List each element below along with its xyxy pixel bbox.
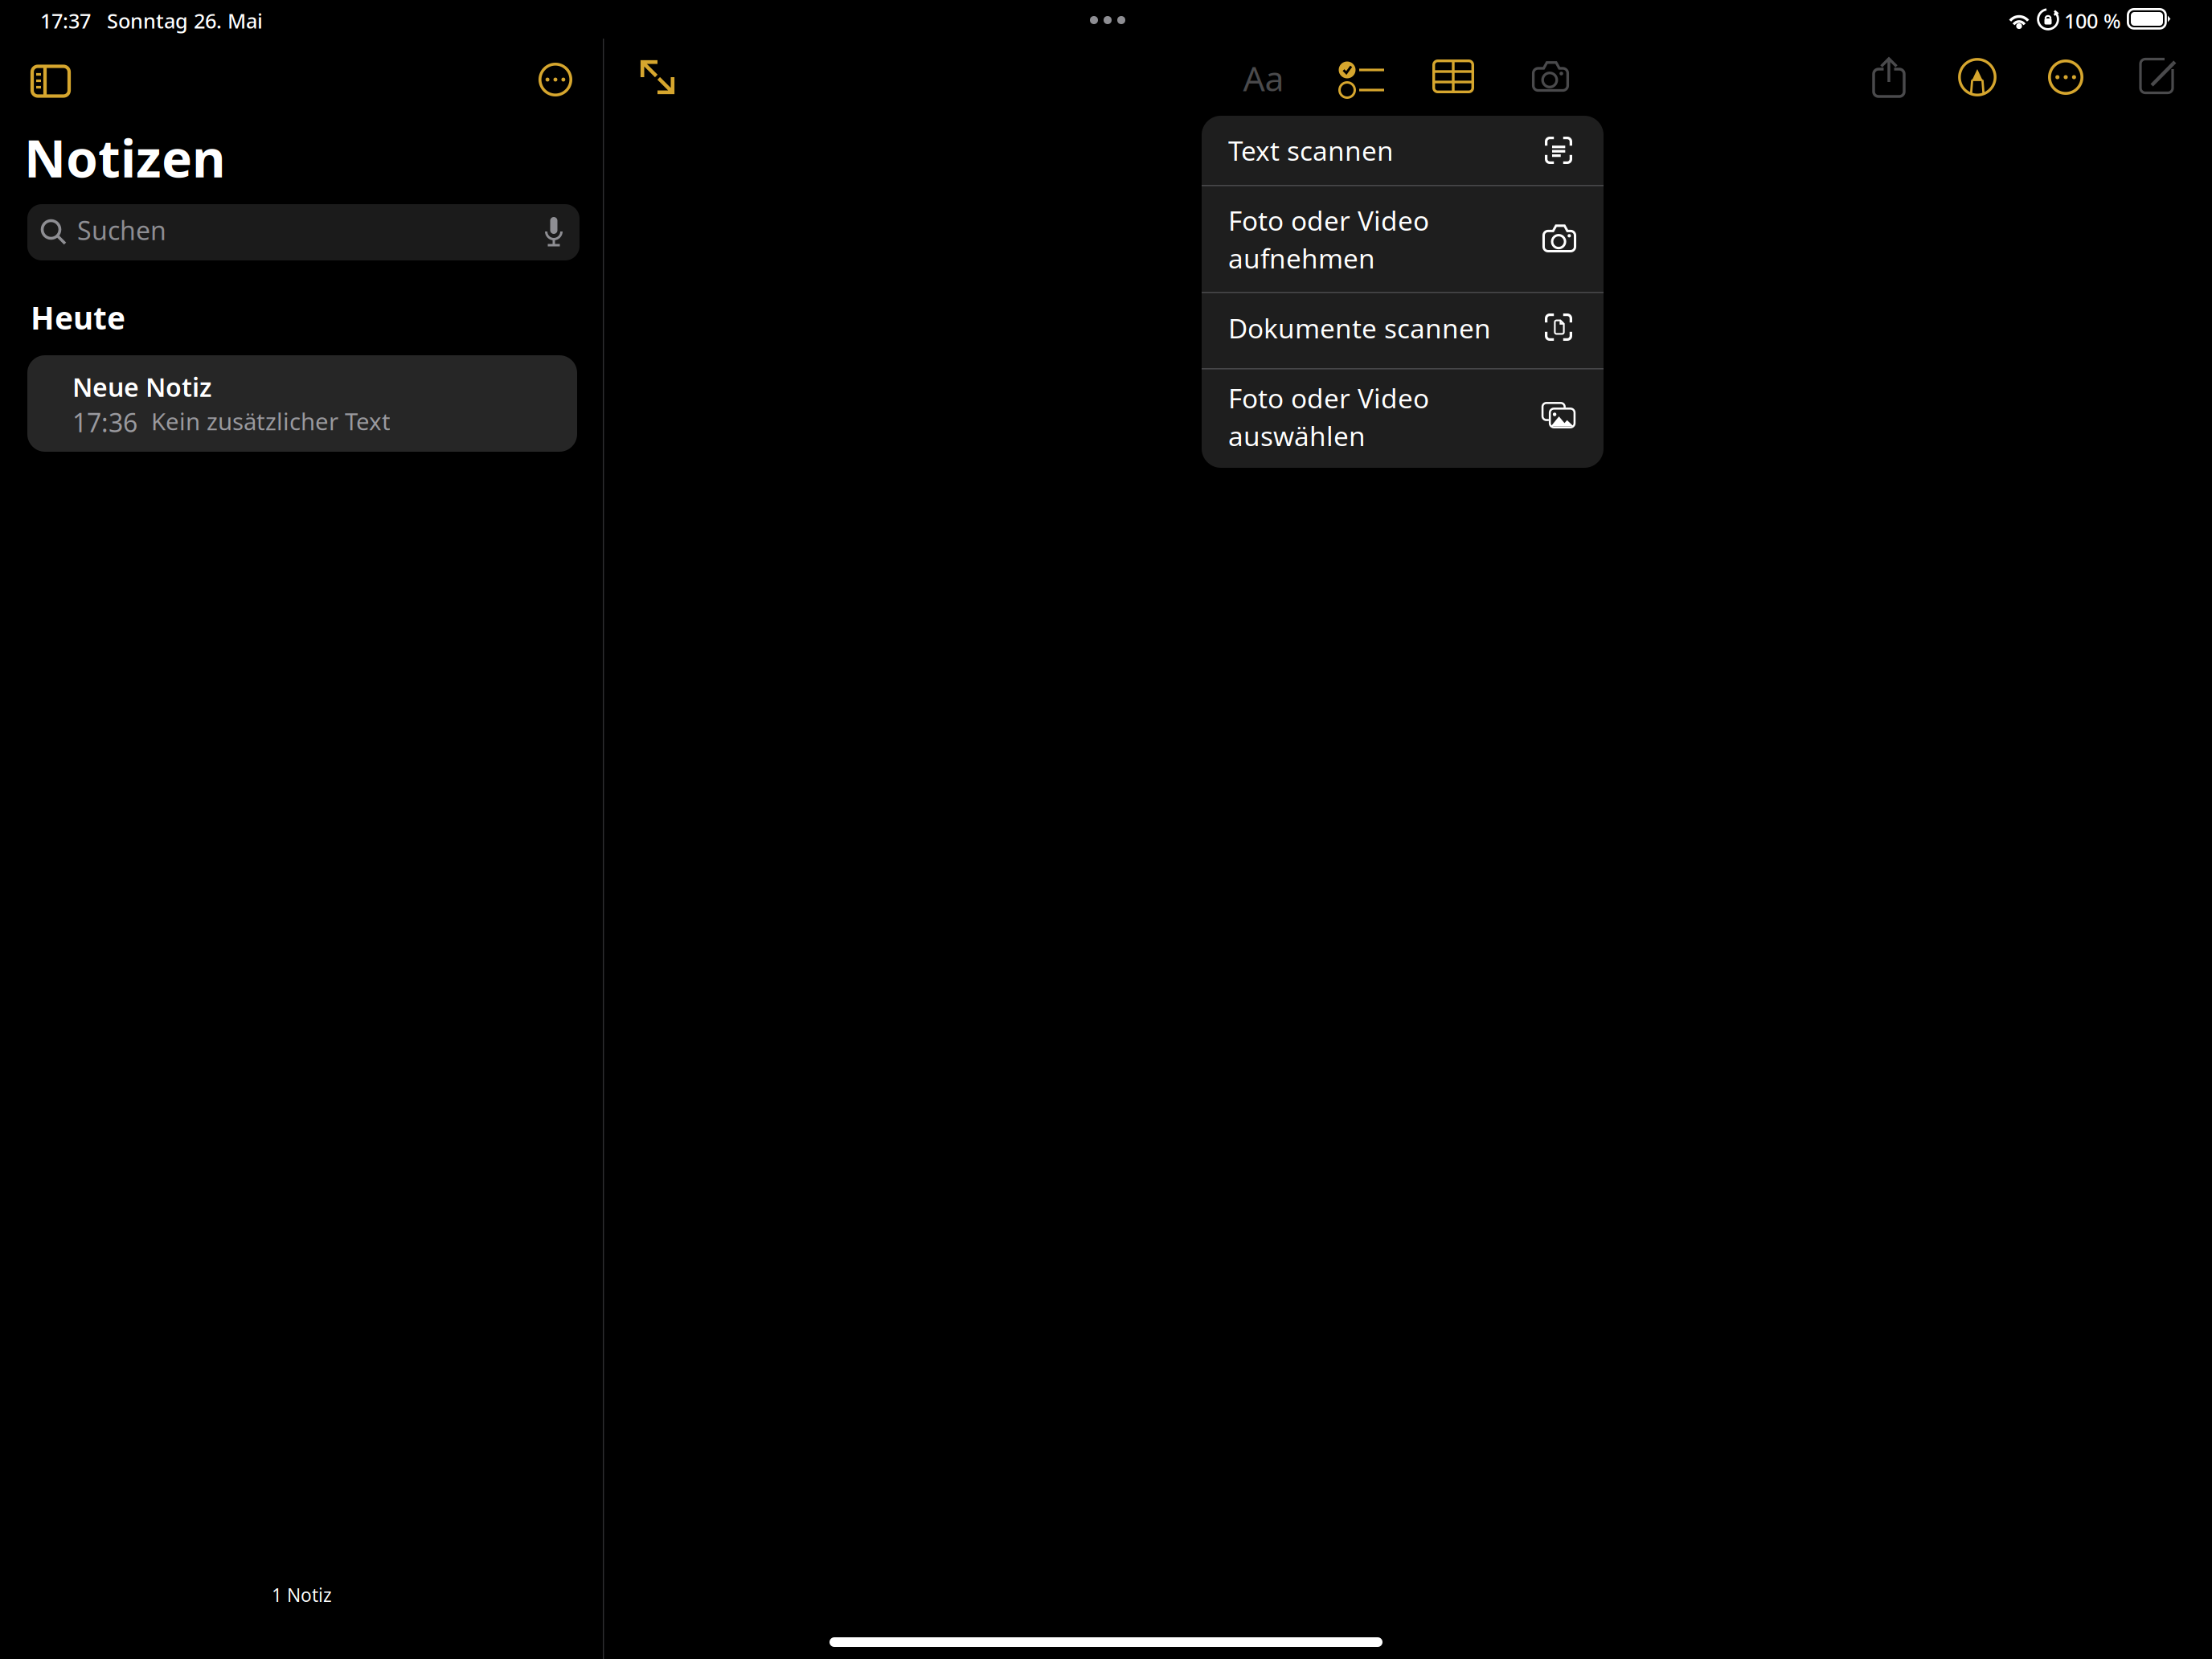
button[interactable]: Foto oder Video xyxy=(1202,368,1604,468)
button[interactable]: Mehr xyxy=(526,55,584,104)
staticText: 17:36 xyxy=(72,405,137,439)
staticText: Text scannen xyxy=(1228,133,1394,168)
button[interactable]: Suchen xyxy=(27,204,580,260)
staticText: Kein zusätzlicher Text xyxy=(151,406,391,437)
button[interactable]: Textformat xyxy=(1243,55,1284,101)
button[interactable]: Mehr xyxy=(2048,59,2083,95)
button[interactable]: Checkliste xyxy=(1338,61,1385,98)
staticText: Foto oder Video xyxy=(1228,203,1429,238)
button[interactable]: Tabelle xyxy=(1432,59,1474,93)
staticText: 100 % xyxy=(2064,7,2121,34)
staticText: Suchen xyxy=(77,213,166,247)
button[interactable]: Teilen xyxy=(1872,56,1906,98)
staticText: Neue Notiz xyxy=(72,370,211,404)
button[interactable]: Neue Notiz xyxy=(2139,57,2179,97)
staticText: Aa xyxy=(1243,55,1284,101)
staticText: auswählen xyxy=(1228,418,1366,454)
button[interactable]: Medien hinzufügen xyxy=(1532,61,1569,92)
staticText: Heute xyxy=(31,297,125,338)
button[interactable]: Dokumente scannen xyxy=(1202,292,1604,368)
staticText: aufnehmen xyxy=(1228,240,1375,276)
staticText: Foto oder Video xyxy=(1228,380,1429,416)
staticText: 1 Notiz xyxy=(272,1583,332,1607)
staticText: Notizen xyxy=(24,123,226,192)
button[interactable]: Markieren xyxy=(1958,58,1997,96)
button[interactable]: Foto oder Video xyxy=(1202,185,1604,292)
button[interactable]: Seitenleiste ausblenden xyxy=(19,56,82,106)
staticText: Sonntag 26. Mai xyxy=(107,7,263,34)
button[interactable]: Neue Notiz xyxy=(27,355,577,452)
button[interactable]: Vollbild xyxy=(640,59,675,95)
staticText: 17:37 xyxy=(40,7,91,34)
staticText: Dokumente scannen xyxy=(1228,310,1491,346)
button[interactable]: Text scannen xyxy=(1202,116,1604,185)
